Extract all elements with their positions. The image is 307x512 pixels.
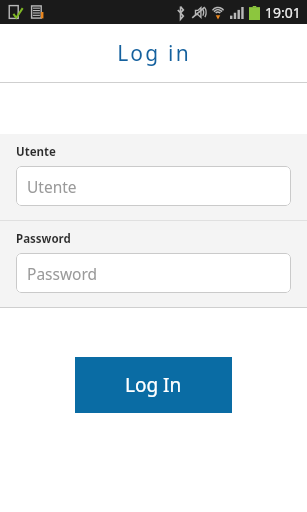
staticText: Log in (117, 39, 191, 68)
button[interactable]: Password (16, 253, 291, 293)
staticText: Log In (125, 372, 182, 398)
staticText: Utente (27, 176, 77, 197)
button[interactable]: Utente (16, 166, 291, 206)
staticText: 19:01 (265, 3, 301, 22)
staticText: Utente (16, 144, 56, 160)
staticText: Password (27, 263, 98, 284)
button[interactable]: Log In (75, 357, 232, 413)
staticText: Password (16, 231, 71, 247)
